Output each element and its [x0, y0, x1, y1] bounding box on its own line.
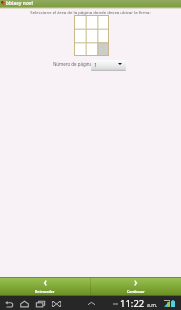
button[interactable]: Back [2, 296, 16, 310]
button[interactable]: bbiasy novi [0, 0, 181, 7]
button[interactable]: Recents [33, 296, 47, 310]
staticText: Número de página [53, 61, 93, 67]
button[interactable]: 1 [91, 60, 126, 71]
staticText: Retroceder [35, 289, 55, 294]
button[interactable]: Expand [85, 296, 98, 310]
button[interactable]: Continuar [90, 277, 181, 296]
staticText: a.m. [147, 302, 158, 309]
staticText: Seleccione el área de la página donde de… [0, 9, 181, 15]
button[interactable]: Screenshot [49, 296, 63, 310]
staticText: 11:22 [120, 297, 145, 310]
button[interactable]: Retroceder [0, 277, 90, 296]
button[interactable]: Home [17, 296, 31, 310]
staticText: Continuar [127, 289, 145, 294]
button[interactable]: Área de la página [74, 15, 109, 56]
staticText: bbiasy novi [6, 0, 33, 7]
staticText: 1 [94, 61, 97, 68]
